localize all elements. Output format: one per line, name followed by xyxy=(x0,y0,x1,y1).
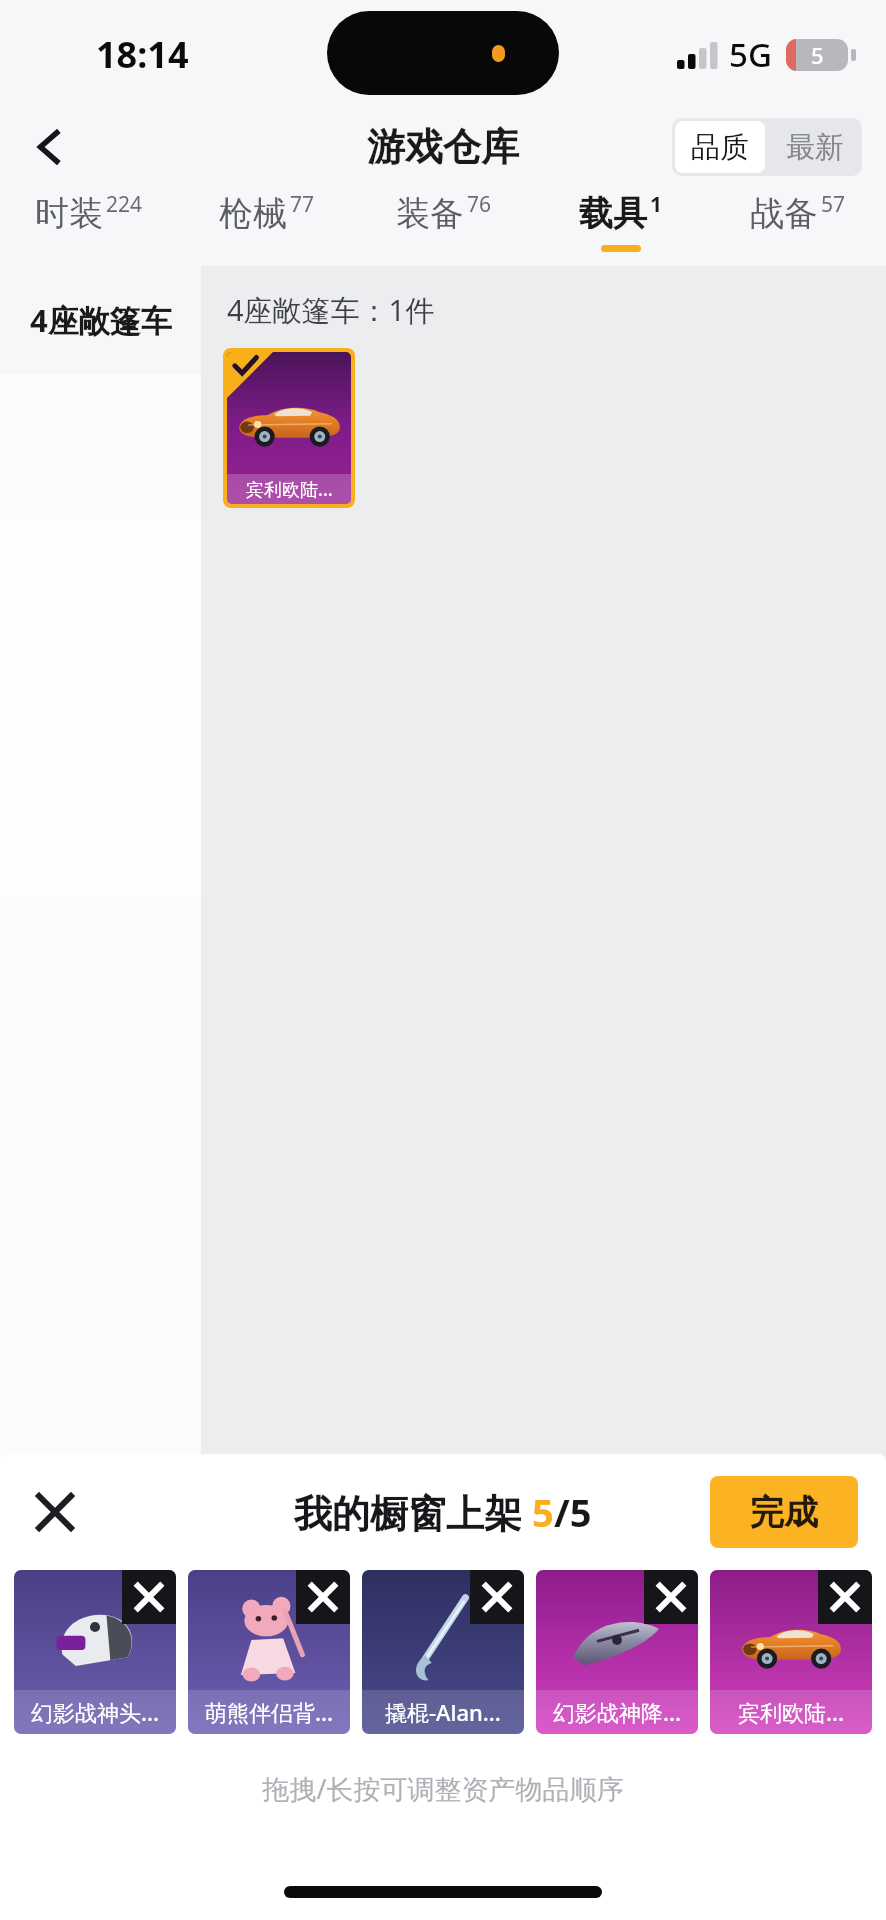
staticText: 4座敞篷车 xyxy=(30,299,172,341)
staticText: 76 xyxy=(467,190,492,219)
staticText: 枪械 xyxy=(219,192,287,235)
staticText: 撬棍-Alan... xyxy=(385,1697,501,1727)
button[interactable]: 萌熊伴侣背... xyxy=(188,1570,350,1734)
staticText: 5 xyxy=(811,40,824,70)
button[interactable]: 移除 xyxy=(644,1570,698,1624)
button[interactable]: 载具 xyxy=(532,186,709,266)
button[interactable]: 移除 xyxy=(122,1570,176,1624)
button[interactable]: 宾利欧陆... xyxy=(223,348,355,508)
staticText: 5 xyxy=(532,1486,554,1538)
button[interactable]: 返回 xyxy=(14,111,86,183)
staticText: /5 xyxy=(554,1486,592,1538)
staticText: 57 xyxy=(821,190,846,219)
staticText: 幻影战神头... xyxy=(31,1697,159,1727)
button[interactable]: 移除 xyxy=(818,1570,872,1624)
staticText: 77 xyxy=(290,190,315,219)
button[interactable]: 幻影战神降... xyxy=(536,1570,698,1734)
staticText: 1 xyxy=(650,190,663,219)
staticText: 4座敞篷车：1件 xyxy=(227,290,435,330)
button[interactable]: 移除 xyxy=(470,1570,524,1624)
button[interactable]: 完成 xyxy=(710,1476,858,1548)
staticText: 5G xyxy=(729,32,772,77)
button[interactable]: 最新 xyxy=(768,118,862,176)
staticText: 完成 xyxy=(750,1491,818,1534)
staticText: 载具 xyxy=(579,192,647,235)
staticText: 时装 xyxy=(35,192,103,235)
button[interactable]: 品质 xyxy=(675,121,765,173)
staticText: 宾利欧陆... xyxy=(246,477,333,502)
staticText: 萌熊伴侣背... xyxy=(205,1697,333,1727)
button[interactable]: 宾利欧陆... xyxy=(710,1570,872,1734)
button[interactable]: 分享 xyxy=(736,1710,850,1824)
staticText: 品质 xyxy=(691,129,749,166)
staticText: 我的橱窗上架 xyxy=(294,1486,532,1538)
staticText: 18:14 xyxy=(96,30,189,79)
button[interactable]: 时装 xyxy=(0,186,178,266)
button[interactable]: 装备 xyxy=(355,186,532,266)
button[interactable]: 移除 xyxy=(296,1570,350,1624)
button[interactable]: 枪械 xyxy=(178,186,355,266)
staticText: 战备 xyxy=(750,192,818,235)
staticText: 拖拽/长按可调整资产物品顺序 xyxy=(0,1770,886,1807)
staticText: 装备 xyxy=(396,192,464,235)
staticText: 幻影战神降... xyxy=(553,1697,681,1727)
button[interactable]: 4座敞篷车 xyxy=(0,266,201,374)
button[interactable]: 幻影战神头... xyxy=(14,1570,176,1734)
staticText: 最新 xyxy=(786,129,844,166)
button[interactable]: 战备 xyxy=(709,186,886,266)
button[interactable]: 关闭 xyxy=(18,1475,92,1549)
staticText: 224 xyxy=(106,190,143,219)
staticText: 游戏仓库 xyxy=(367,123,519,171)
staticText: 宾利欧陆... xyxy=(738,1697,844,1727)
button[interactable]: 撬棍-Alan... xyxy=(362,1570,524,1734)
